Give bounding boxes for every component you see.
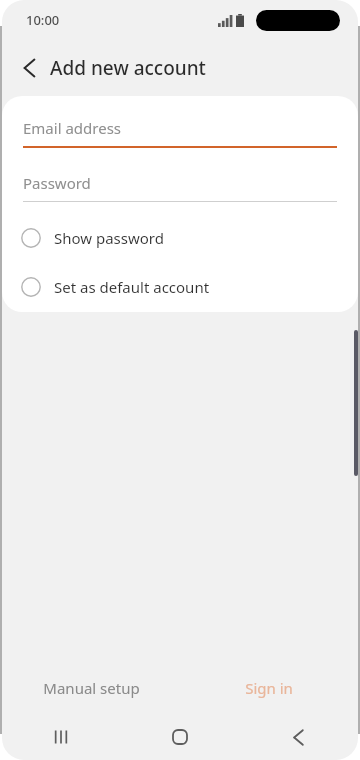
button[interactable]: Back [12,51,46,85]
staticText: Add new account [50,55,206,81]
staticText: Email address [23,118,122,138]
staticText: Set as default account [54,277,210,297]
button[interactable]: Email address [23,118,337,148]
button[interactable]: Sign in [180,662,358,714]
button[interactable]: Show password [2,213,358,262]
button[interactable]: Recent apps [2,714,120,760]
staticText: Password [23,173,91,193]
staticText: Show password [54,228,164,248]
button[interactable]: Set as default account [2,262,358,311]
button[interactable]: Password [23,173,337,202]
staticText: Manual setup [43,678,140,698]
button[interactable]: Back [239,714,358,760]
button[interactable]: Home [120,714,239,760]
staticText: Sign in [245,678,293,698]
button[interactable]: Manual setup [2,662,180,714]
staticText: 10:00 [26,11,60,29]
